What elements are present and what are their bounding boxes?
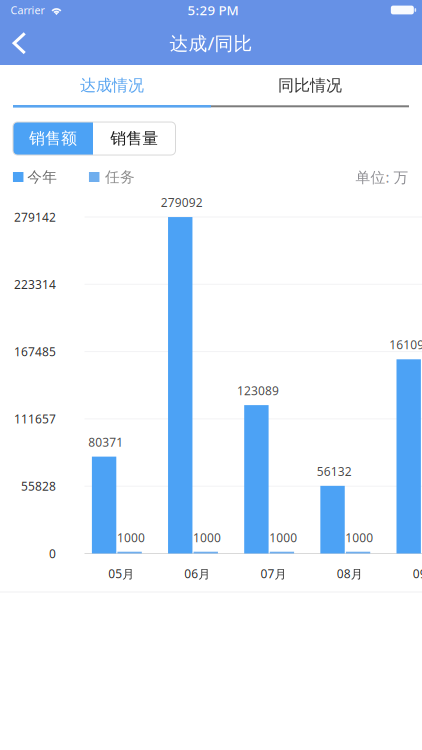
staticText: 任务 [105,168,135,186]
staticText: 销售额 [29,129,77,148]
staticText: 167485 [14,344,56,359]
staticText: 1000 [269,530,297,545]
staticText: 279092 [161,194,203,210]
staticText: 07月 [260,566,286,582]
staticText: 达成/同比 [169,31,252,55]
staticText: 1000 [193,530,221,545]
staticText: 06月 [184,566,210,582]
button[interactable]: 同比情况 [211,65,409,105]
staticText: 80371 [88,434,123,450]
staticText: 08月 [337,566,363,582]
staticText: 今年 [27,168,57,186]
staticText: 单位: 万 [355,167,408,187]
staticText: 达成情况 [80,76,144,95]
staticText: 05月 [108,566,134,582]
staticText: Carrier [11,3,45,17]
button[interactable]: 销售额 [13,122,93,155]
staticText: 同比情况 [278,76,342,95]
staticText: 09月 [413,566,422,582]
staticText: 223314 [14,276,56,292]
staticText: 56132 [317,463,352,479]
staticText: 123089 [237,383,279,398]
staticText: 0 [49,545,56,561]
staticText: 1000 [345,530,373,545]
button[interactable]: 销售量 [93,122,175,155]
button[interactable]: 达成情况 [13,65,211,105]
staticText: 111657 [14,411,56,427]
staticText: 161090 [389,337,422,353]
staticText: 1000 [117,530,145,545]
staticText: 销售量 [110,129,158,148]
staticText: 279142 [14,209,56,225]
staticText: 55828 [21,478,56,494]
staticText: 5:29 PM [187,1,238,19]
button[interactable]: Back [0,21,41,66]
